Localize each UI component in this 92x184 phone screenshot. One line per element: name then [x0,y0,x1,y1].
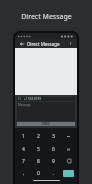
button[interactable]: 6 [47,144,60,154]
button[interactable]: Message [17,102,75,121]
staticText: Direct Message [27,41,60,47]
button[interactable]: 5 [32,144,45,154]
staticText: 3 [52,133,55,140]
staticText: SEND [42,122,50,126]
staticText: 0 [37,170,40,177]
staticText: 8 [37,158,40,165]
button[interactable] [62,156,75,166]
button[interactable]: 0 [32,168,45,178]
button[interactable]: , [17,168,30,178]
button[interactable]: Back [18,40,25,47]
staticText: 1 [22,133,25,140]
button[interactable] [62,168,75,178]
staticText: +1 555 0199 [24,97,42,101]
staticText: 4 [22,146,25,153]
staticText: 6 [52,146,55,153]
staticText: Message [18,103,31,107]
button[interactable]: SEND [17,122,75,126]
staticText: . [53,170,55,177]
staticText: 9 [52,158,55,165]
staticText: Direct Message [21,12,72,22]
staticText: To [18,97,22,101]
button[interactable]: 3 [47,131,60,142]
button[interactable]: 4 [17,144,30,154]
staticText: 2 [37,133,40,140]
button[interactable]: 7 [17,156,30,166]
button[interactable]: 2 [32,131,45,142]
staticText: 7 [22,158,25,165]
button[interactable]: . [47,168,60,178]
button[interactable] [62,144,75,154]
button[interactable]: More options [67,40,74,47]
staticText: , [23,170,25,177]
button[interactable]: 8 [32,156,45,166]
button[interactable] [62,131,75,142]
button[interactable]: 1 [17,131,30,142]
staticText: 5 [37,146,40,153]
button[interactable]: 9 [47,156,60,166]
